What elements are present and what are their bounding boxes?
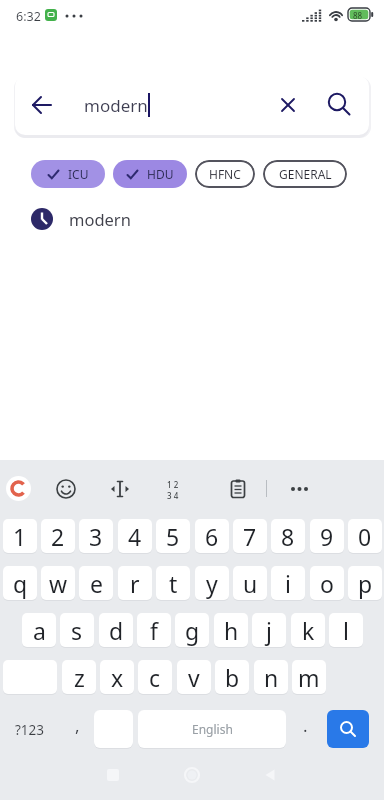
button[interactable]: f bbox=[137, 613, 171, 647]
button[interactable]: ICU bbox=[31, 160, 105, 188]
staticText: 3 bbox=[89, 521, 103, 552]
staticText: t bbox=[169, 568, 178, 599]
staticText: . bbox=[303, 714, 308, 737]
button[interactable] bbox=[276, 93, 300, 117]
staticText: n bbox=[264, 662, 279, 693]
staticText: o bbox=[320, 568, 334, 599]
staticText: q bbox=[13, 568, 28, 599]
staticText: 9 bbox=[320, 521, 334, 552]
button[interactable]: v bbox=[177, 660, 211, 694]
staticText: u bbox=[243, 568, 258, 599]
button[interactable]: English bbox=[138, 710, 286, 748]
button[interactable] bbox=[54, 477, 78, 501]
button[interactable]: e bbox=[79, 566, 113, 600]
button[interactable]: , bbox=[62, 706, 92, 745]
staticText: , bbox=[75, 714, 80, 737]
button[interactable]: b bbox=[215, 660, 249, 694]
button[interactable]: d bbox=[99, 613, 133, 647]
staticText: w bbox=[49, 568, 68, 599]
staticText: r bbox=[130, 568, 140, 599]
button[interactable] bbox=[30, 93, 54, 117]
button[interactable]: l bbox=[329, 613, 363, 647]
button[interactable]: u bbox=[233, 566, 267, 600]
staticText: modern bbox=[84, 94, 148, 117]
staticText: d bbox=[109, 615, 124, 646]
button[interactable]: g bbox=[175, 613, 209, 647]
staticText: x bbox=[111, 662, 124, 693]
staticText: y bbox=[206, 568, 218, 599]
staticText: ICU bbox=[68, 166, 89, 182]
button[interactable]: 9 bbox=[310, 519, 344, 553]
button[interactable]: 7 bbox=[233, 519, 267, 553]
button[interactable]: 1 2 bbox=[167, 479, 179, 501]
staticText: 6 bbox=[205, 521, 219, 552]
button[interactable]: HDU bbox=[113, 160, 187, 188]
staticText: z bbox=[74, 662, 85, 693]
button[interactable]: 6 bbox=[195, 519, 229, 553]
staticText: b bbox=[225, 662, 240, 693]
button[interactable]: t bbox=[156, 566, 190, 600]
staticText: m bbox=[298, 662, 320, 693]
button[interactable]: s bbox=[60, 613, 94, 647]
staticText: v bbox=[188, 662, 200, 693]
button[interactable]: k bbox=[291, 613, 325, 647]
staticText: e bbox=[90, 568, 103, 599]
button[interactable]: 8 bbox=[271, 519, 305, 553]
button[interactable]: 1 bbox=[3, 519, 37, 553]
button[interactable] bbox=[94, 710, 133, 748]
button[interactable]: 0 bbox=[348, 519, 382, 553]
staticText: 6:32 bbox=[16, 8, 41, 25]
button[interactable]: m bbox=[292, 660, 326, 694]
staticText: English bbox=[192, 721, 233, 737]
button[interactable]: n bbox=[254, 660, 288, 694]
button[interactable]: . bbox=[290, 706, 320, 745]
button[interactable]: y bbox=[195, 566, 229, 600]
staticText: p bbox=[358, 568, 373, 599]
button[interactable]: c bbox=[138, 660, 172, 694]
button[interactable]: w bbox=[41, 566, 75, 600]
button[interactable]: z bbox=[62, 660, 96, 694]
button[interactable]: 2 bbox=[41, 519, 75, 553]
button[interactable]: ?123 bbox=[2, 710, 58, 749]
staticText: 0 bbox=[358, 521, 372, 552]
button[interactable]: r bbox=[118, 566, 152, 600]
staticText: modern bbox=[69, 208, 131, 230]
button[interactable] bbox=[108, 477, 132, 501]
staticText: 4 bbox=[128, 521, 142, 552]
button[interactable]: p bbox=[348, 566, 382, 600]
button[interactable]: 3 bbox=[79, 519, 113, 553]
button[interactable] bbox=[6, 476, 31, 501]
staticText: s bbox=[71, 615, 83, 646]
button[interactable]: x bbox=[100, 660, 134, 694]
staticText: c bbox=[149, 662, 161, 693]
staticText: l bbox=[343, 615, 349, 646]
staticText: g bbox=[185, 615, 200, 646]
button[interactable]: i bbox=[271, 566, 305, 600]
staticText: 8 bbox=[281, 521, 295, 552]
button[interactable] bbox=[327, 710, 369, 748]
button[interactable]: 4 bbox=[118, 519, 152, 553]
button[interactable]: a bbox=[22, 613, 56, 647]
button[interactable]: GENERAL bbox=[263, 160, 347, 188]
staticText: h bbox=[224, 615, 239, 646]
staticText: HFNC bbox=[209, 166, 241, 182]
button[interactable] bbox=[226, 477, 250, 501]
button[interactable]: j bbox=[252, 613, 286, 647]
staticText: 1 bbox=[13, 521, 27, 552]
staticText: f bbox=[150, 615, 158, 646]
button[interactable]: o bbox=[310, 566, 344, 600]
button[interactable]: HFNC bbox=[195, 160, 255, 188]
button[interactable]: h bbox=[214, 613, 248, 647]
staticText: 3 4 bbox=[167, 490, 179, 501]
staticText: i bbox=[285, 568, 291, 599]
button[interactable]: 5 bbox=[156, 519, 190, 553]
staticText: k bbox=[302, 615, 315, 646]
button[interactable] bbox=[179, 762, 205, 788]
button[interactable] bbox=[100, 762, 126, 788]
staticText: ?123 bbox=[15, 721, 45, 739]
button[interactable] bbox=[326, 91, 354, 119]
button[interactable]: modern bbox=[0, 202, 384, 236]
button[interactable]: q bbox=[3, 566, 37, 600]
